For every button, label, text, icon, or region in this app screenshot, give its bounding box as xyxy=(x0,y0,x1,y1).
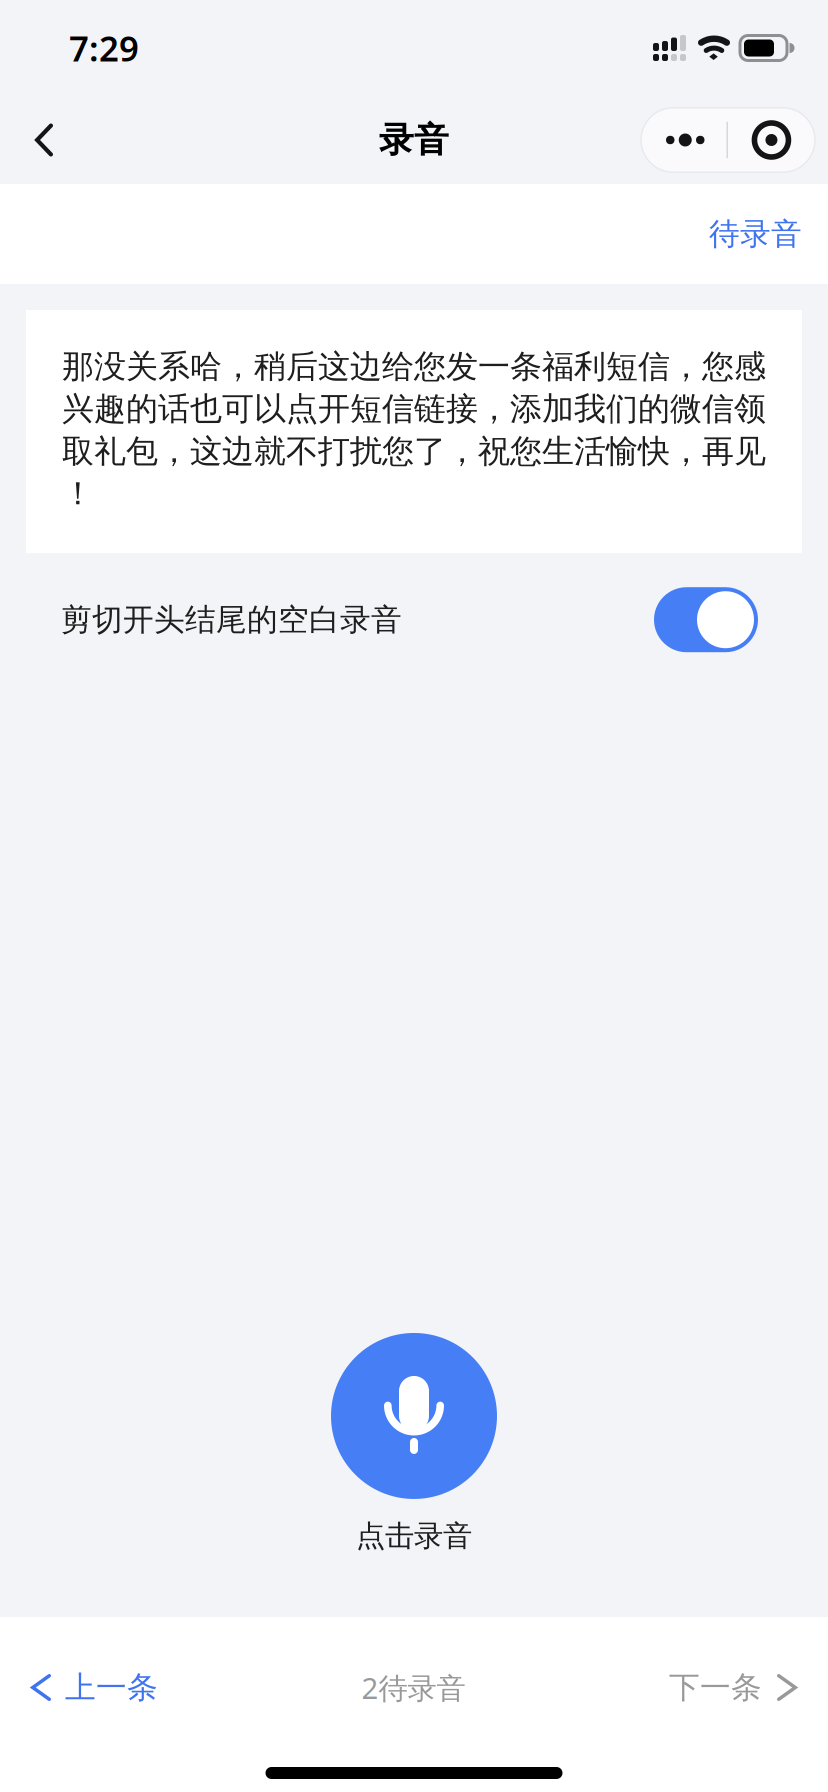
button[interactable]: 更多 xyxy=(641,108,815,172)
staticText: 上一条 xyxy=(65,1669,158,1706)
staticText: 剪切开头结尾的空白录音 xyxy=(61,601,402,639)
button[interactable]: 点击录音 xyxy=(331,1333,497,1554)
button[interactable]: 返回 xyxy=(0,96,88,184)
staticText: 2待录音 xyxy=(361,1668,465,1707)
staticText: 点击录音 xyxy=(356,1518,472,1554)
button[interactable]: 待录音 xyxy=(685,195,828,273)
staticText: 待录音 xyxy=(709,215,802,253)
staticText: 7:29 xyxy=(69,25,139,71)
staticText: 录音 xyxy=(379,119,449,161)
staticText: 那没关系哈，稍后这边给您发一条福利短信，您感兴趣的话也可以点开短信链接，添加我们… xyxy=(62,347,766,513)
button[interactable]: 下一条 xyxy=(649,1639,828,1735)
button[interactable]: 上一条 xyxy=(0,1639,178,1735)
button[interactable]: 剪切开头结尾的空白录音 xyxy=(654,587,758,652)
staticText: 下一条 xyxy=(669,1669,762,1706)
